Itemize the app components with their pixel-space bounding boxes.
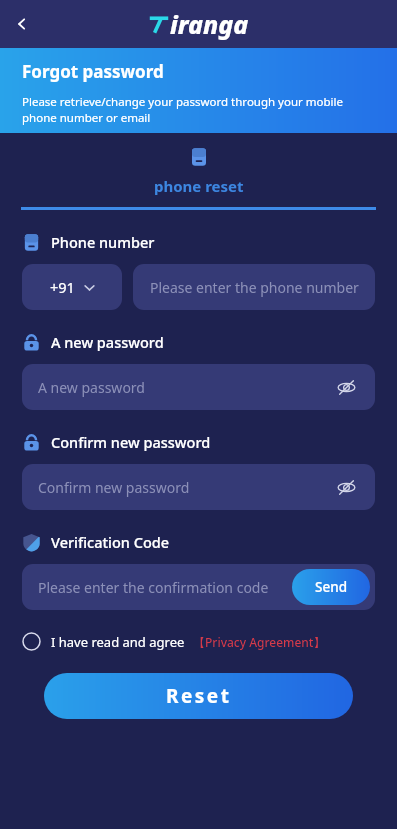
staticText: Please enter the phone number [150, 278, 359, 297]
staticText: Please enter the confirmation code [38, 578, 269, 597]
staticText: Reset [166, 683, 232, 709]
button[interactable]: phone reset [0, 147, 397, 207]
button[interactable]: Show password [333, 474, 359, 500]
button[interactable]: Show password [333, 374, 359, 400]
staticText: Phone number [51, 232, 155, 252]
button[interactable]: Confirm new password [22, 464, 375, 510]
staticText: phone reset [154, 176, 244, 196]
staticText: +91 [50, 277, 75, 297]
staticText: Please retrieve/change your password thr… [22, 94, 371, 125]
staticText: Verification Code [51, 532, 170, 552]
button[interactable]: A new password [22, 364, 375, 410]
button[interactable]: +91 [22, 264, 122, 310]
staticText: Forgot password [22, 60, 164, 83]
staticText: Confirm new password [51, 432, 211, 452]
button[interactable]: 【Privacy Agreement】 [193, 634, 326, 650]
staticText: Send [315, 578, 348, 596]
staticText: A new password [51, 332, 164, 352]
button[interactable]: I have read and agree [22, 632, 375, 651]
staticText: Confirm new password [38, 478, 190, 497]
button[interactable]: Reset [44, 673, 353, 719]
staticText: I have read and agree [51, 633, 185, 651]
button[interactable]: Please enter the confirmation code [22, 564, 375, 610]
staticText: A new password [38, 378, 145, 397]
staticText: iranga [170, 7, 249, 41]
button[interactable]: Please enter the phone number [133, 264, 375, 310]
button[interactable]: Send [292, 569, 370, 605]
button[interactable]: Back [0, 2, 44, 46]
